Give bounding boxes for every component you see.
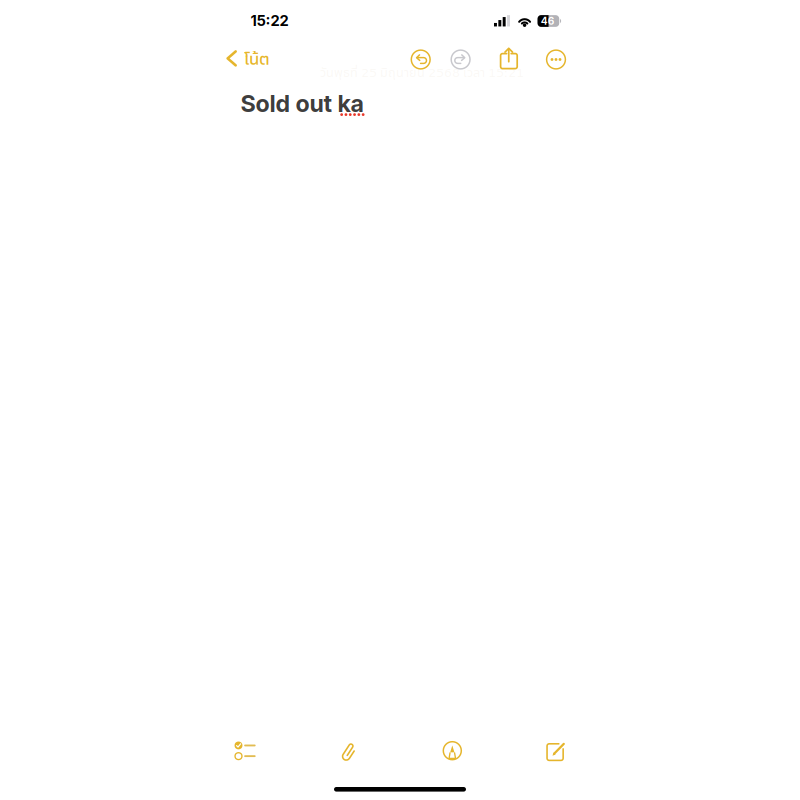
- button[interactable]: Redo: [443, 42, 478, 77]
- staticText: โน้ต: [244, 47, 270, 70]
- button[interactable]: Attach: [316, 730, 382, 774]
- staticText: วันพุธที่ 25 มิถุนายน 2568 เวลา 15:21: [320, 63, 524, 81]
- button[interactable]: โน้ต: [222, 39, 278, 78]
- button[interactable]: Checklist: [212, 729, 278, 773]
- button[interactable]: Markup: [419, 729, 485, 773]
- staticText: 46: [541, 15, 555, 27]
- button[interactable]: Share: [493, 41, 525, 77]
- staticText: Sold out ka: [240, 89, 363, 117]
- staticText: 15:22: [251, 12, 289, 29]
- button[interactable]: More: [539, 42, 573, 77]
- button[interactable]: Undo: [403, 42, 438, 77]
- button[interactable]: New Note: [523, 730, 589, 774]
